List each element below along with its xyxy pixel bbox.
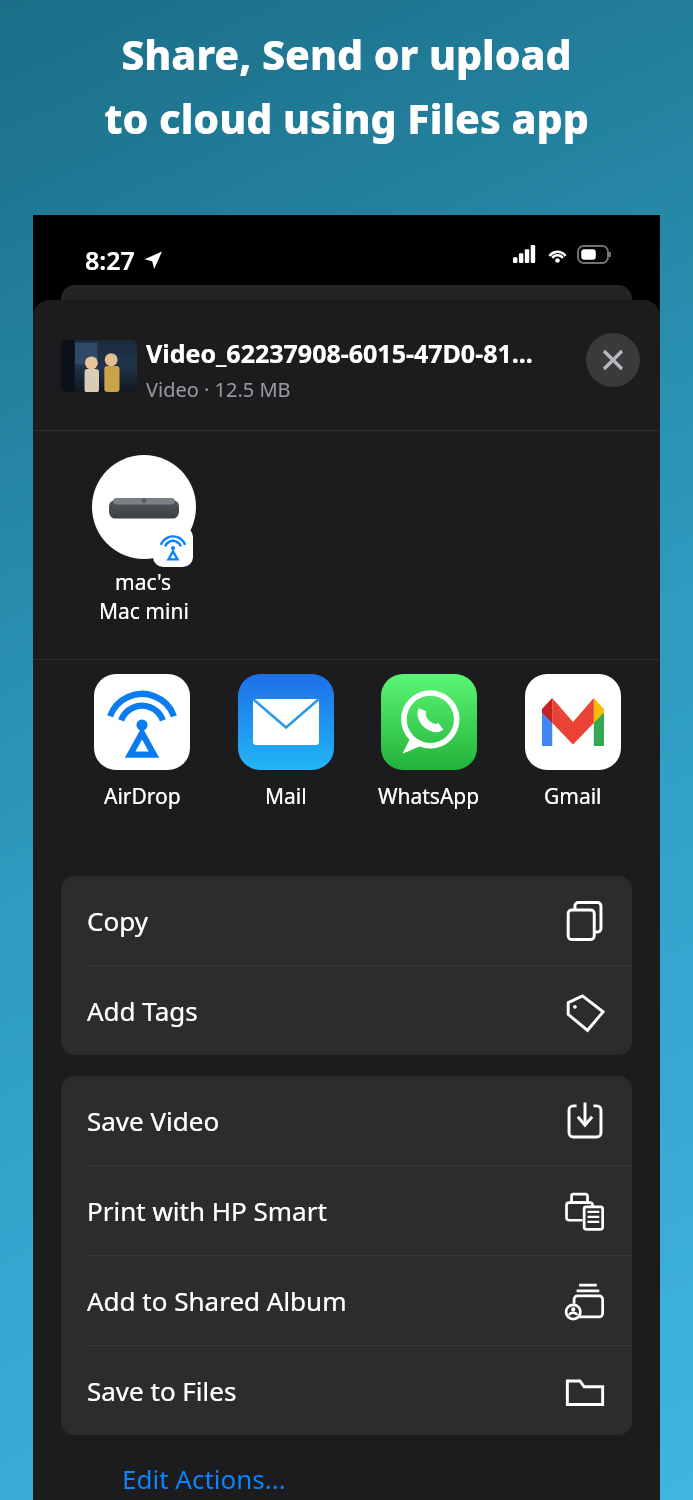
button[interactable]: Save to Files xyxy=(61,1346,632,1435)
staticText: Video · 12.5 MB xyxy=(146,376,291,403)
staticText: Edit Actions... xyxy=(122,1461,286,1496)
staticText: 8:27 xyxy=(85,243,135,277)
button[interactable]: Print with HP Smart xyxy=(61,1166,632,1255)
button[interactable]: Add Tags xyxy=(61,966,632,1055)
button[interactable]: Save Video xyxy=(61,1076,632,1165)
staticText: Copy xyxy=(87,903,148,938)
staticText: WhatsApp xyxy=(378,782,480,811)
button[interactable]: WhatsApp xyxy=(359,674,499,811)
staticText: Add to Shared Album xyxy=(87,1283,347,1318)
button[interactable]: Add to Shared Album xyxy=(61,1256,632,1345)
staticText: mac's xyxy=(115,568,172,597)
button[interactable]: Copy xyxy=(61,876,632,965)
staticText: Add Tags xyxy=(87,993,198,1028)
button[interactable]: Video_62237908-6015-47D0-81... xyxy=(33,300,660,430)
button[interactable]: Gmail xyxy=(503,674,643,811)
staticText: Video_62237908-6015-47D0-81... xyxy=(146,336,533,370)
staticText: Save to Files xyxy=(87,1373,237,1408)
staticText: Gmail xyxy=(544,782,602,811)
staticText: Share, Send or upload xyxy=(121,26,572,82)
button[interactable]: mac's xyxy=(66,455,221,626)
staticText: Mac mini xyxy=(99,597,189,626)
button[interactable]: Close xyxy=(586,333,640,387)
staticText: Print with HP Smart xyxy=(87,1193,327,1228)
button[interactable]: Edit Actions... xyxy=(33,1457,660,1500)
staticText: to cloud using Files app xyxy=(104,90,589,146)
staticText: Save Video xyxy=(87,1103,220,1138)
staticText: Mail xyxy=(265,782,307,811)
button[interactable]: Mail xyxy=(216,674,356,811)
staticText: AirDrop xyxy=(104,782,181,811)
button[interactable]: AirDrop xyxy=(72,674,212,811)
